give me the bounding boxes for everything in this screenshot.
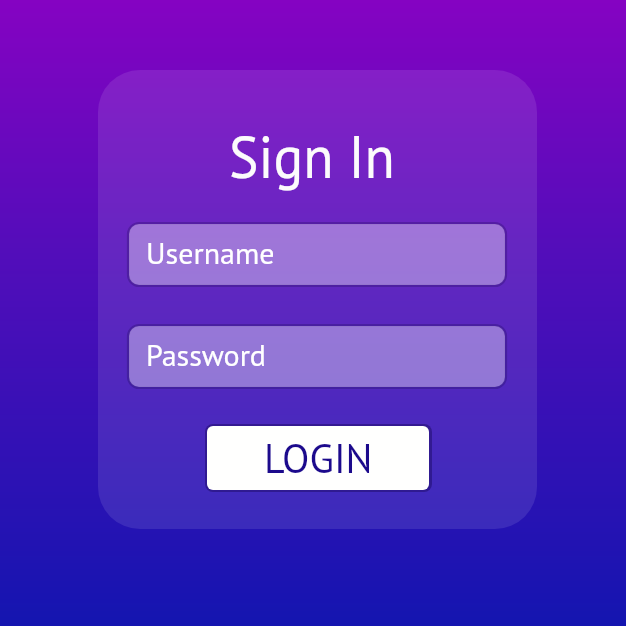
staticText: Username: [146, 233, 275, 272]
button[interactable]: Username: [129, 224, 505, 285]
button[interactable]: LOGIN: [207, 426, 429, 490]
staticText: Password: [146, 335, 266, 374]
button[interactable]: Password: [129, 326, 505, 387]
staticText: Sign In: [229, 117, 395, 193]
staticText: LOGIN: [264, 432, 373, 484]
